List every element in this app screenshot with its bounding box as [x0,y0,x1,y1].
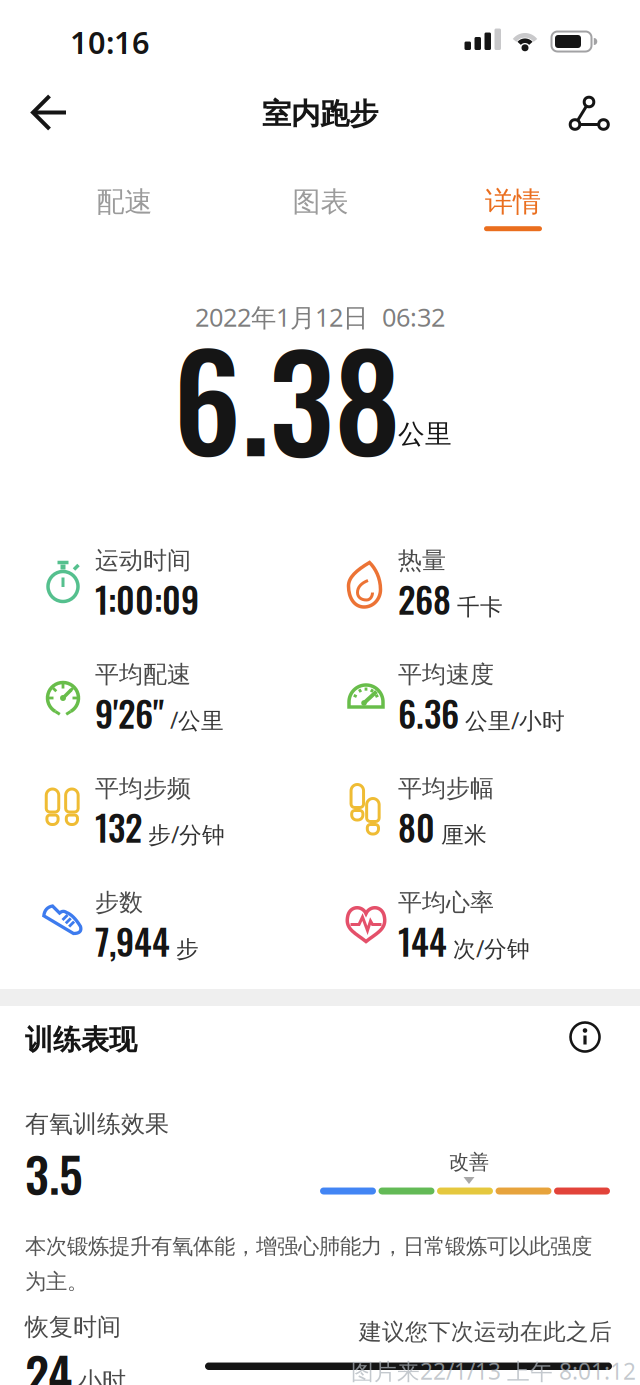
button[interactable]: 配速 [64,177,184,227]
staticText: 7,944 [95,915,170,967]
staticText: 训练表现 [25,1023,137,1057]
staticText: 图片来22/1/13 上午 8:01:12 [351,1356,636,1385]
staticText: 公里/小时 [465,705,565,735]
staticText: 小时 [78,1366,126,1385]
button[interactable]: Info [563,1015,607,1059]
staticText: 步数 [95,888,143,917]
staticText: 次/分钟 [453,933,530,963]
staticText: 室内跑步 [262,96,378,132]
staticText: 步/分钟 [148,819,225,849]
staticText: 平均步频 [95,774,191,803]
button[interactable]: 图表 [260,177,380,227]
staticText: 改善 [449,1150,489,1174]
staticText: 268 [398,573,451,625]
staticText: 公里 [398,418,452,450]
staticText: 平均速度 [398,660,494,689]
staticText: 平均配速 [95,660,191,689]
button[interactable]: Share route [565,89,613,137]
staticText: 6.36 [398,687,459,739]
staticText: 本次锻炼提升有氧体能，增强心肺能力，日常锻炼可以此强度 为主。 [25,1233,592,1295]
staticText: 132 [95,801,142,853]
staticText: 6.38 [173,300,401,494]
staticText: 10:16 [70,22,150,62]
staticText: 详情 [485,185,541,219]
staticText: 3.5 [25,1137,83,1208]
staticText: 图表 [292,185,348,219]
button[interactable]: Back [26,90,72,136]
staticText: 建议您下次运动在此之后 [359,1318,612,1346]
staticText: /公里 [170,705,224,735]
button[interactable]: 详情 [453,185,573,231]
staticText: 厘米 [441,821,487,849]
staticText: 平均心率 [398,888,494,917]
staticText: 80 [398,801,435,853]
staticText: 2022年1月12日 06:32 [195,300,445,334]
staticText: 1:00:09 [95,573,199,625]
staticText: 千卡 [457,593,503,621]
staticText: 有氧训练效果 [25,1109,169,1139]
staticText: 运动时间 [95,546,191,575]
staticText: 热量 [398,546,446,575]
staticText: 144 [398,915,447,967]
staticText: 9'26" [95,687,164,739]
staticText: 恢复时间 [25,1312,121,1342]
staticText: 步 [176,935,199,963]
staticText: 平均步幅 [398,774,494,803]
staticText: 配速 [96,185,152,219]
staticText: 24 [25,1337,72,1385]
